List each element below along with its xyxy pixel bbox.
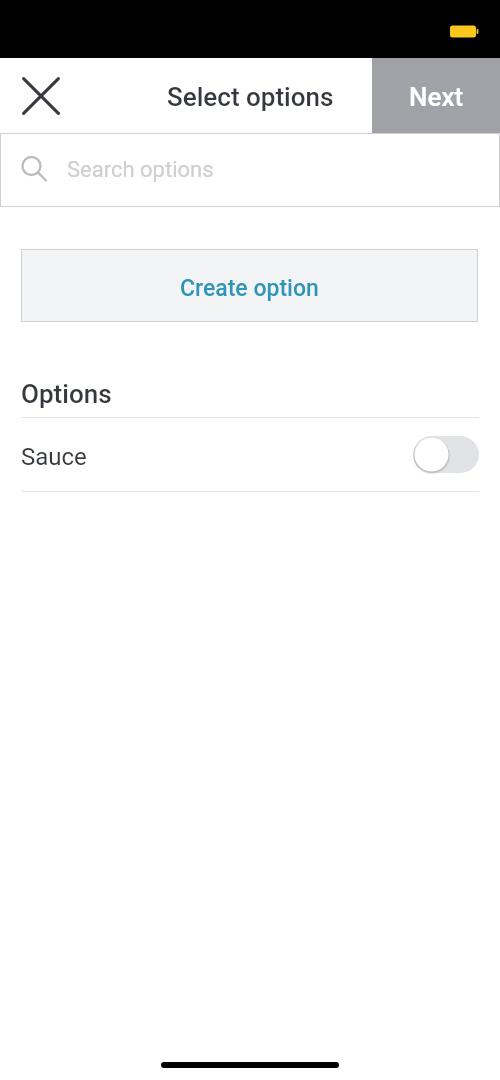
staticText: Select options bbox=[167, 82, 334, 112]
button[interactable]: Search options bbox=[0, 133, 500, 207]
button[interactable]: Create option bbox=[21, 249, 478, 322]
staticText: Sauce bbox=[21, 443, 87, 471]
button[interactable]: Sauce toggle bbox=[413, 436, 479, 473]
staticText: Search options bbox=[67, 157, 214, 183]
button[interactable]: Close bbox=[0, 58, 80, 133]
staticText: Next bbox=[409, 82, 464, 112]
staticText: Options bbox=[21, 379, 112, 409]
button[interactable]: Next bbox=[372, 58, 500, 133]
button[interactable]: Sauce bbox=[21, 418, 479, 491]
staticText: Create option bbox=[180, 275, 319, 302]
